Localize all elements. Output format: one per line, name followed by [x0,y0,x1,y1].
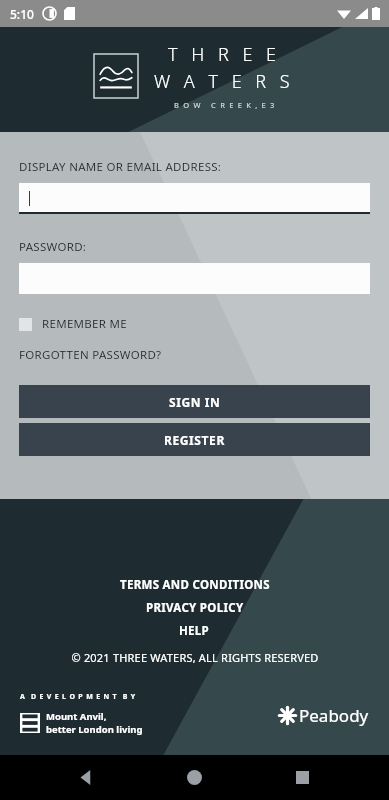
button[interactable]: TERMS AND CONDITIONS [120,577,270,593]
staticText: Peabody [299,704,369,727]
staticText: © 2021 THREE WATERS, ALL RIGHTS RESERVED [71,650,319,665]
button[interactable]: Home [187,770,202,785]
button[interactable]: SIGN IN [19,385,370,418]
staticText: REGISTER [164,432,225,448]
staticText: FORGOTTEN PASSWORD? [19,347,162,363]
staticText: Mount Anvil, [46,710,107,723]
button[interactable]: PRIVACY POLICY [146,600,244,616]
button[interactable]: HELP [179,623,210,639]
staticText: 5:10 [10,6,34,22]
staticText: REMEMBER ME [42,316,127,332]
staticText: HELP [179,623,210,639]
staticText: DISPLAY NAME OR EMAIL ADDRESS: [19,159,222,175]
staticText: better London living [46,723,143,736]
staticText: A D E V E L O P M E N T B Y [20,692,136,702]
button[interactable]: Back [79,770,94,785]
staticText: TERMS AND CONDITIONS [120,577,270,593]
staticText: SIGN IN [169,394,221,410]
button[interactable]: FORGOTTEN PASSWORD? [19,347,162,363]
button[interactable]: REMEMBER ME [19,316,127,332]
staticText: PRIVACY POLICY [146,600,244,616]
button[interactable]: Display name or email address field [19,183,370,214]
staticText: T H R E E [168,42,281,67]
staticText: B O W C R E E K , E 3 [174,100,276,110]
staticText: PASSWORD: [19,239,87,255]
staticText: W A T E R S [154,69,295,94]
button[interactable]: REGISTER [19,423,370,456]
